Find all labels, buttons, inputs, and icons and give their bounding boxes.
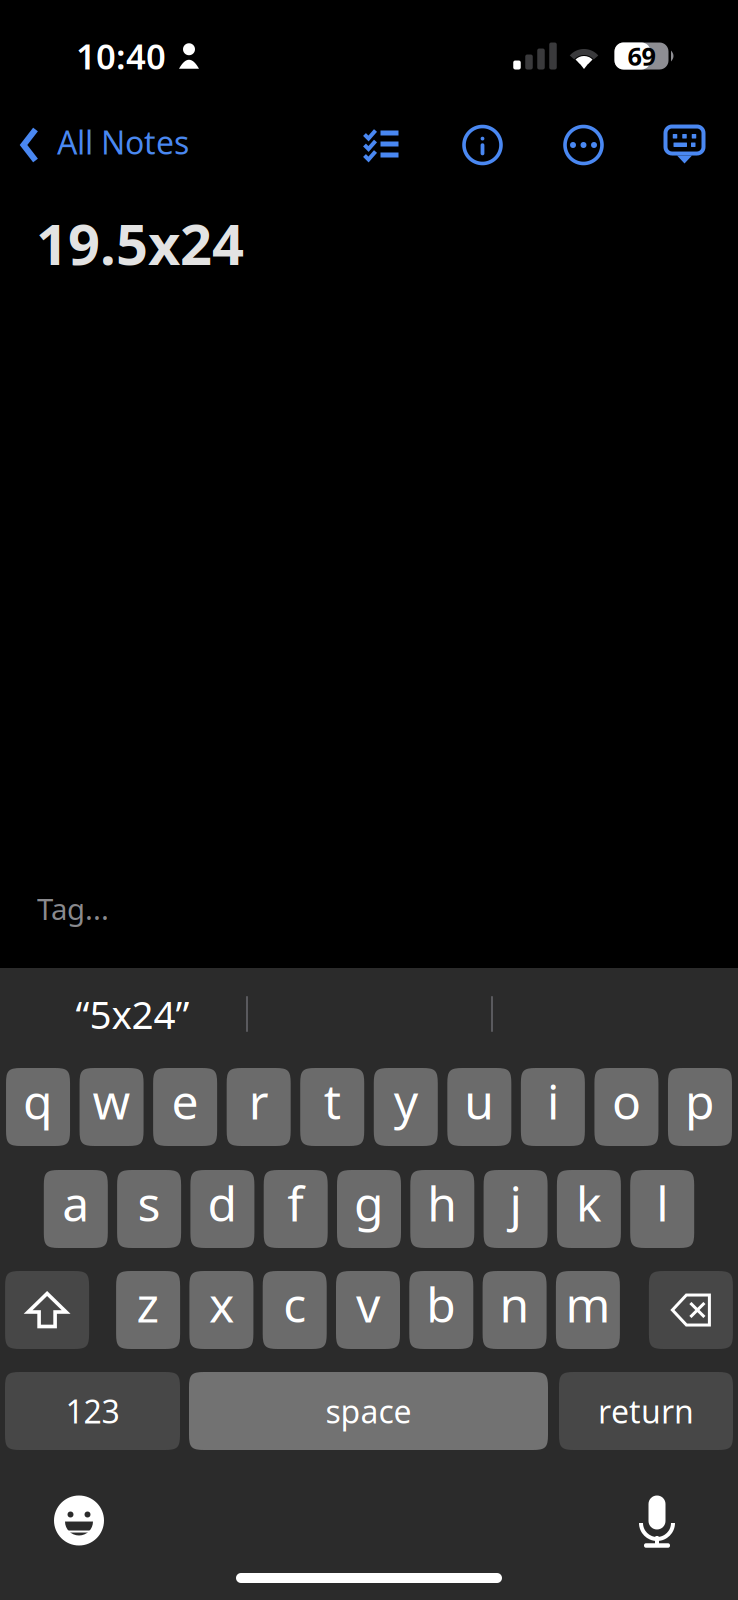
button[interactable]: n (483, 1271, 547, 1349)
staticText: q (23, 1069, 53, 1133)
staticText: c (283, 1272, 306, 1336)
button[interactable]: w (80, 1068, 144, 1146)
staticText: 69 (627, 39, 655, 73)
staticText: 123 (65, 1390, 119, 1432)
button[interactable]: u (447, 1068, 511, 1146)
button[interactable]: Delete (649, 1271, 733, 1349)
button[interactable]: j (484, 1170, 548, 1248)
staticText: w (93, 1069, 131, 1133)
button[interactable]: p (668, 1068, 732, 1146)
staticText: h (427, 1171, 457, 1235)
staticText: a (62, 1171, 89, 1235)
button[interactable]: g (337, 1170, 401, 1248)
button[interactable]: d (190, 1170, 254, 1248)
button[interactable]: e (153, 1068, 217, 1146)
button[interactable]: s (117, 1170, 181, 1248)
button[interactable]: f (264, 1170, 328, 1248)
button[interactable]: x (189, 1271, 253, 1349)
button[interactable]: Return (559, 1372, 733, 1450)
staticText: 19.5x24 (36, 206, 244, 280)
staticText: o (612, 1069, 641, 1133)
staticText: u (464, 1069, 494, 1133)
button[interactable]: k (557, 1170, 621, 1248)
staticText: n (500, 1272, 530, 1336)
button[interactable]: Dictation (639, 1492, 675, 1548)
staticText: z (137, 1272, 160, 1336)
staticText: y (394, 1069, 418, 1133)
staticText: space (325, 1390, 411, 1432)
button[interactable]: All Notes (0, 100, 189, 190)
button[interactable]: c (263, 1271, 327, 1349)
button[interactable]: v (336, 1271, 400, 1349)
button[interactable]: Space (189, 1372, 548, 1450)
staticText: l (656, 1171, 668, 1235)
staticText: All Notes (57, 121, 189, 163)
staticText: e (172, 1069, 199, 1133)
staticText: 10:40 (76, 33, 166, 79)
staticText: return (598, 1390, 694, 1432)
staticText: f (287, 1171, 304, 1235)
button[interactable]: r (227, 1068, 291, 1146)
button[interactable]: b (409, 1271, 473, 1349)
staticText: i (547, 1069, 559, 1133)
staticText: v (356, 1272, 380, 1336)
button[interactable]: z (116, 1271, 180, 1349)
button[interactable]: l (630, 1170, 694, 1248)
button[interactable]: o (594, 1068, 658, 1146)
staticText: b (426, 1272, 456, 1336)
button[interactable]: q (6, 1068, 70, 1146)
staticText: m (565, 1272, 610, 1336)
staticText: k (576, 1171, 602, 1235)
staticText: t (324, 1069, 341, 1133)
staticText: j (510, 1171, 522, 1235)
button[interactable]: y (374, 1068, 438, 1146)
button[interactable]: m (556, 1271, 620, 1349)
button[interactable]: Numbers (5, 1372, 180, 1450)
button[interactable]: i (521, 1068, 585, 1146)
staticText: r (249, 1069, 269, 1133)
staticText: p (685, 1069, 715, 1133)
staticText: “5x24” (75, 988, 189, 1040)
staticText: g (354, 1171, 384, 1235)
button[interactable]: Hide Keyboard (634, 107, 735, 183)
button[interactable]: a (44, 1170, 108, 1248)
staticText: d (207, 1171, 237, 1235)
staticText: x (209, 1272, 234, 1336)
button[interactable]: More (533, 107, 634, 183)
button[interactable]: “5x24” (0, 968, 265, 1060)
button[interactable]: Checklist (331, 107, 432, 183)
button[interactable]: Info (432, 107, 533, 183)
button[interactable]: Emoji (54, 1495, 104, 1545)
button[interactable]: t (300, 1068, 364, 1146)
staticText: Tag... (37, 889, 109, 928)
button[interactable]: Shift (5, 1271, 89, 1349)
staticText: s (138, 1171, 161, 1235)
button[interactable]: h (410, 1170, 474, 1248)
